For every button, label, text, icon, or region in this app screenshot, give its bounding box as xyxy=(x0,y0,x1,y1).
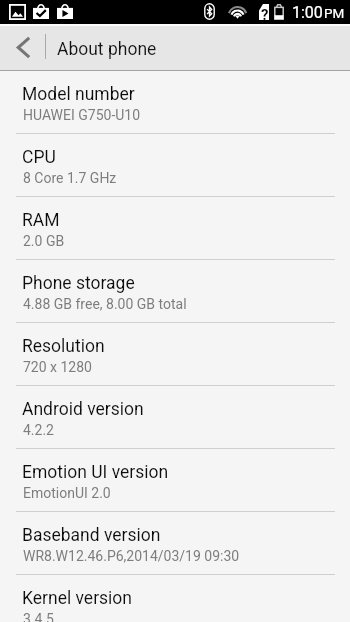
staticText: 4.2.2 xyxy=(23,422,54,438)
staticText: 4.88 GB free, 8.00 GB total xyxy=(23,296,187,312)
staticText: Resolution xyxy=(22,336,105,357)
button[interactable]: Phone storage xyxy=(0,260,350,322)
staticText: Emotion UI version xyxy=(22,462,169,483)
button[interactable]: CPU xyxy=(0,134,350,196)
button[interactable]: Model number xyxy=(0,71,350,133)
staticText: 8 Core 1.7 GHz xyxy=(23,170,117,186)
staticText: CPU xyxy=(22,147,56,168)
staticText: About phone xyxy=(57,39,157,60)
staticText: 2.0 GB xyxy=(23,233,65,249)
button[interactable]: Resolution xyxy=(0,323,350,385)
button[interactable]: Emotion UI version xyxy=(0,449,350,511)
button[interactable]: Android version xyxy=(0,386,350,448)
button[interactable]: Kernel version xyxy=(0,575,350,622)
staticText: Phone storage xyxy=(22,273,135,294)
staticText: 720 x 1280 xyxy=(23,359,92,375)
button[interactable]: RAM xyxy=(0,197,350,259)
staticText: EmotionUI 2.0 xyxy=(23,485,111,501)
staticText: Kernel version xyxy=(22,588,133,609)
staticText: WR8.W12.46.P6,2014/03/19 09:30 xyxy=(23,548,240,564)
staticText: PM xyxy=(324,5,345,21)
button[interactable]: Back xyxy=(0,24,46,71)
staticText: Model number xyxy=(22,84,135,105)
staticText: HUAWEI G750-U10 xyxy=(23,107,141,123)
staticText: 3.4.5 xyxy=(23,611,54,622)
staticText: Baseband version xyxy=(22,525,161,546)
staticText: ? xyxy=(261,6,269,22)
staticText: RAM xyxy=(22,210,60,231)
staticText: 1:00 xyxy=(292,3,323,22)
staticText: Android version xyxy=(22,399,144,420)
button[interactable]: Baseband version xyxy=(0,512,350,574)
